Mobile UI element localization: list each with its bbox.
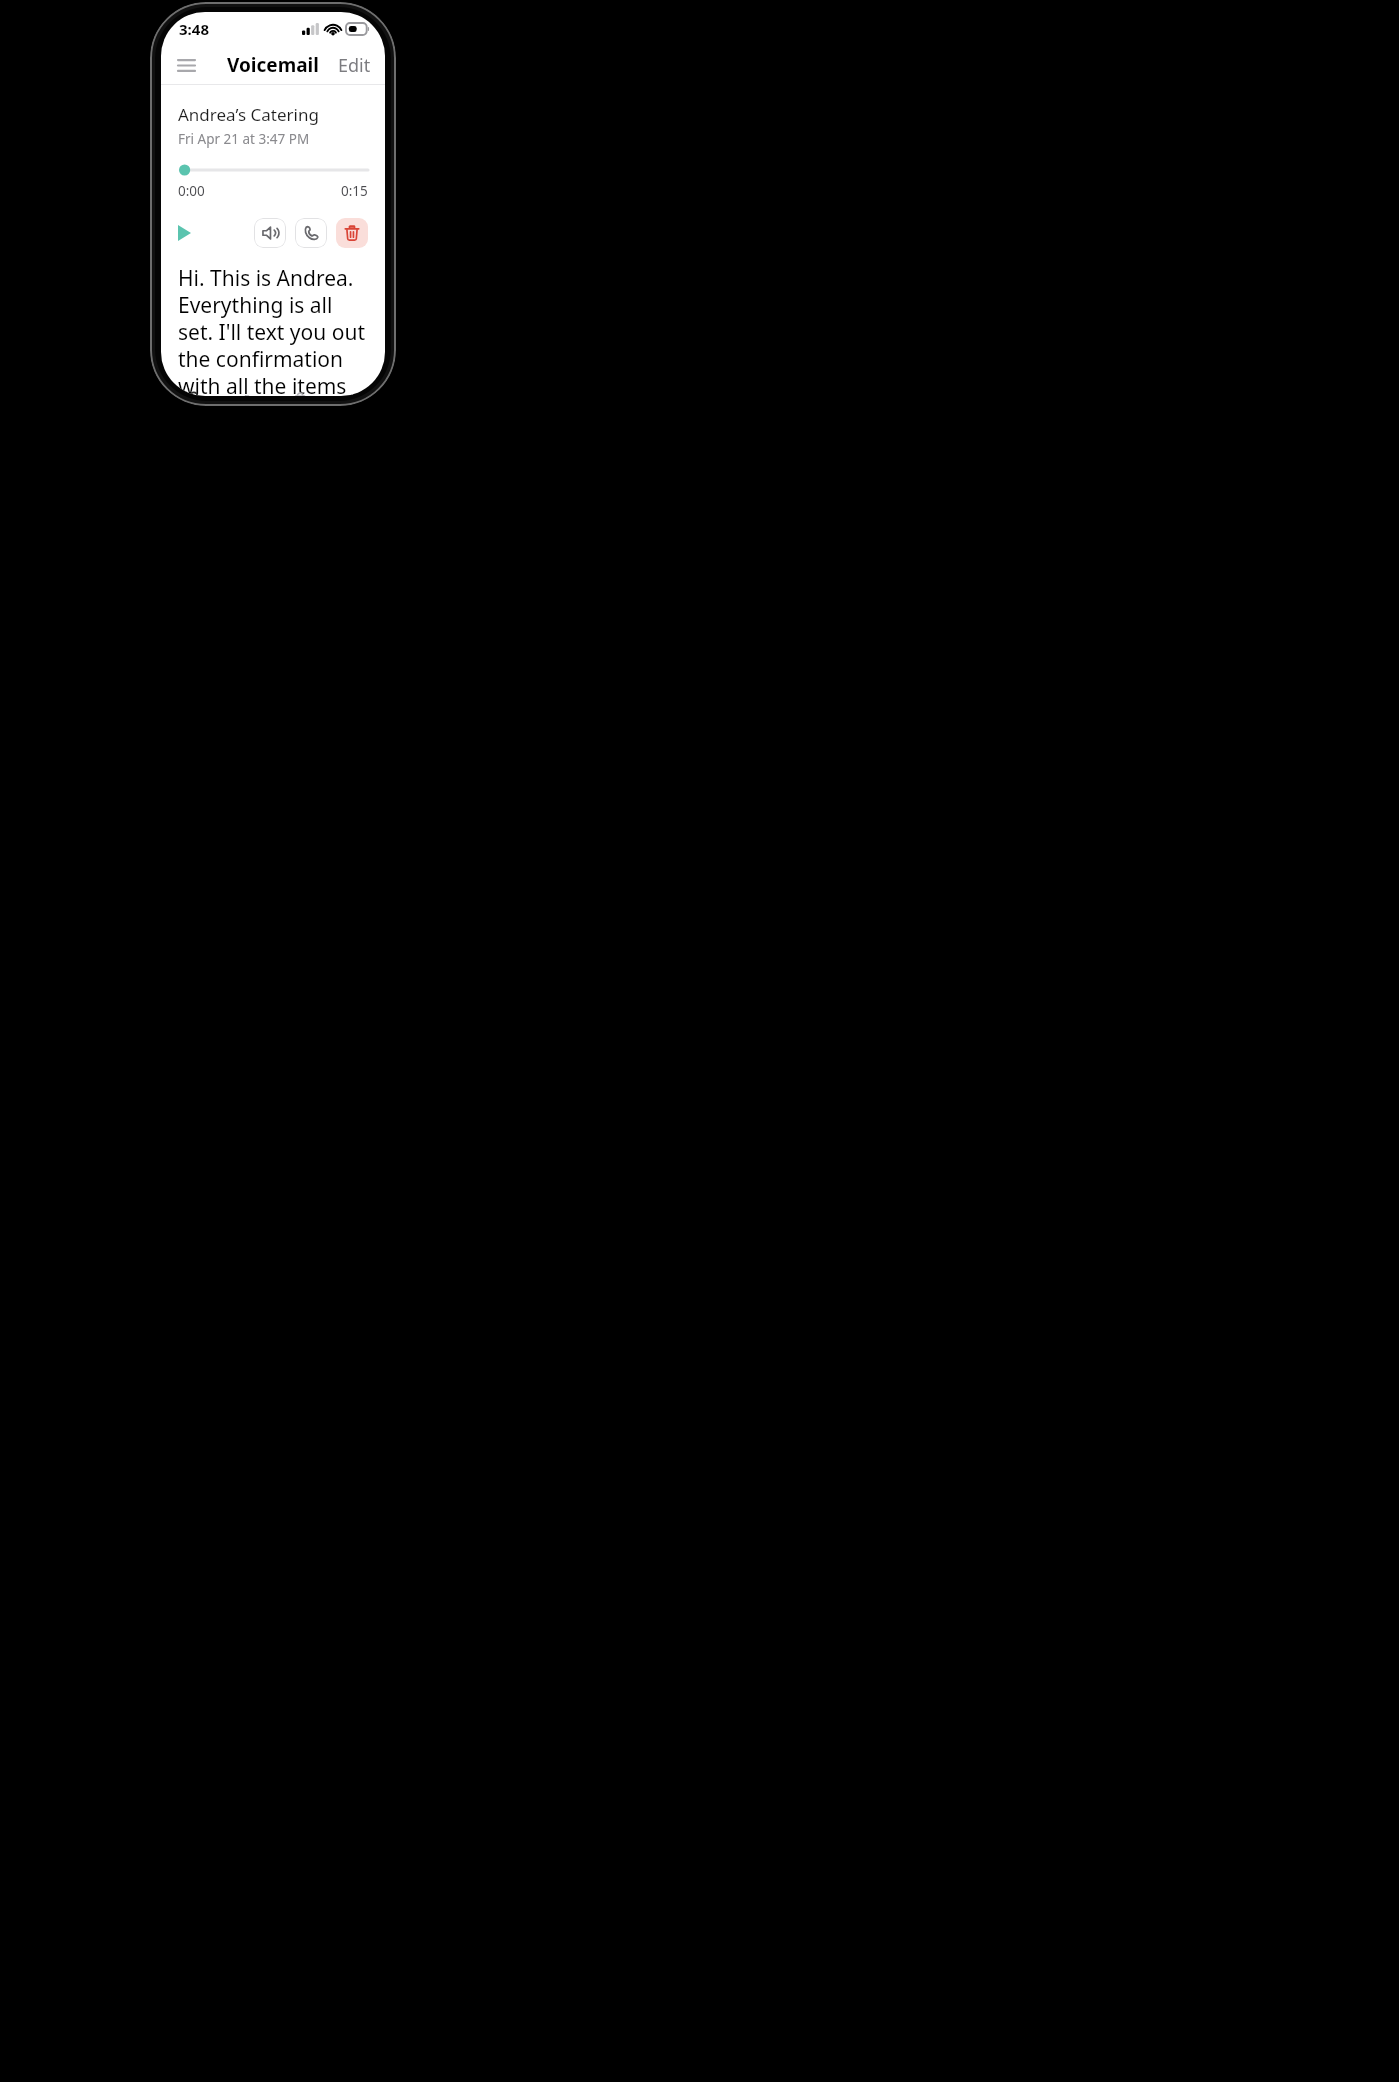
staticText: Edit bbox=[338, 53, 371, 78]
button[interactable]: Playback position bbox=[178, 163, 368, 177]
staticText: 0:00 bbox=[178, 182, 205, 200]
staticText: Voicemail bbox=[227, 52, 319, 78]
staticText: 3:48 bbox=[179, 19, 209, 39]
staticText: 0:15 bbox=[341, 182, 368, 200]
button[interactable]: Edit bbox=[324, 47, 385, 84]
button[interactable]: Delete bbox=[336, 218, 368, 248]
staticText: Andrea’s Catering bbox=[178, 103, 319, 126]
button[interactable]: Speaker bbox=[254, 218, 286, 248]
button[interactable]: Play bbox=[178, 218, 208, 248]
button[interactable]: Menu bbox=[169, 48, 203, 82]
staticText: Fri Apr 21 at 3:47 PM bbox=[178, 130, 310, 148]
staticText: Hi. This is Andrea. Everything is all se… bbox=[178, 264, 373, 396]
button[interactable]: Call back bbox=[295, 218, 327, 248]
